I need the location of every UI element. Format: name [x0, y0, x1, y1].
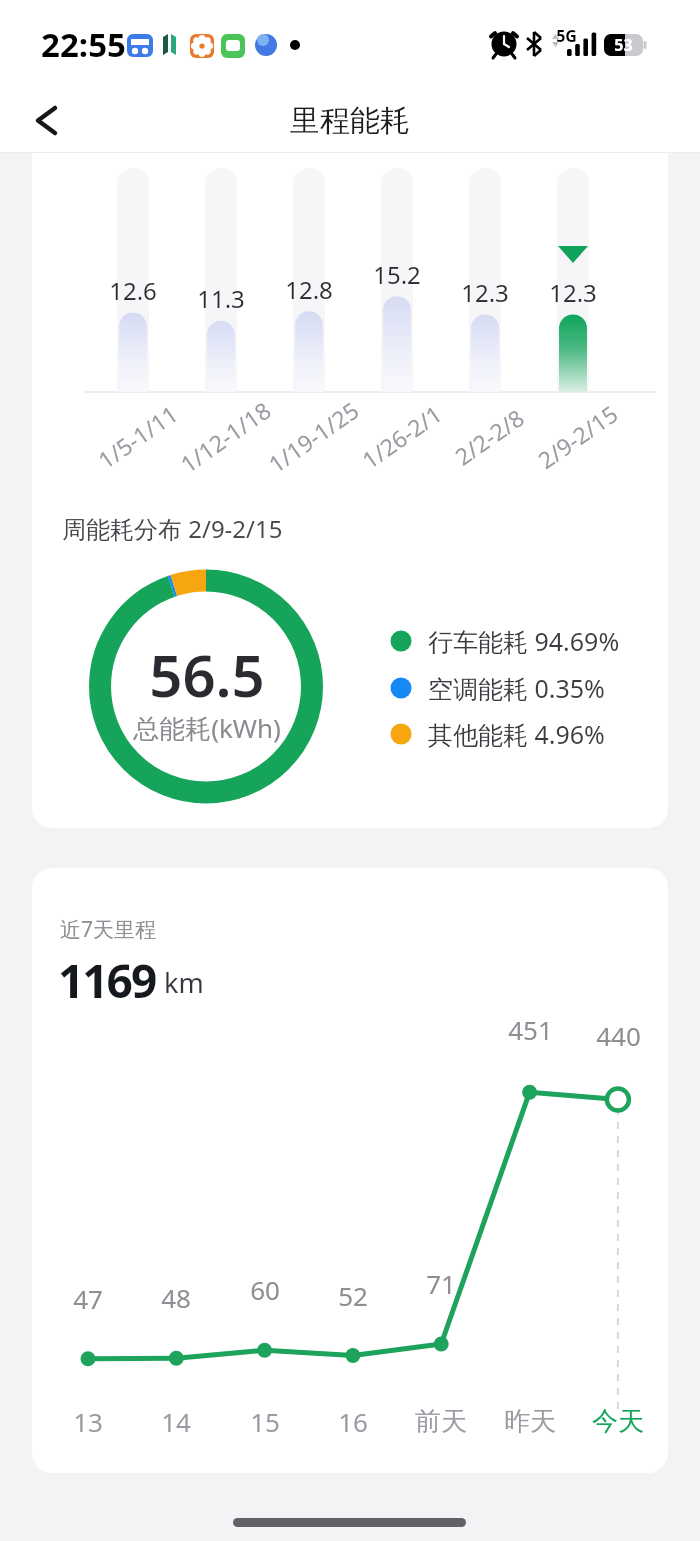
staticText: 15	[250, 1404, 280, 1439]
staticText: 2/2-2/8	[448, 401, 529, 471]
button[interactable]	[20, 100, 64, 144]
staticText: 1/26-2/1	[355, 397, 447, 474]
staticText: 451	[508, 1012, 553, 1047]
staticText: km	[164, 964, 204, 1001]
staticText: 1/5-1/11	[91, 397, 183, 474]
staticText: 行车能耗 94.69%	[428, 624, 620, 658]
staticText: 14	[161, 1404, 191, 1439]
staticText: 12.3	[461, 276, 509, 309]
staticText: 440	[596, 1018, 641, 1053]
staticText: 里程能耗	[290, 102, 410, 140]
staticText: 12.3	[549, 276, 597, 309]
staticText: 47	[73, 1281, 103, 1316]
staticText: 60	[250, 1272, 280, 1307]
staticText: 22:55	[41, 22, 126, 67]
staticText: 1/12-1/18	[174, 394, 276, 478]
staticText: 11.3	[197, 282, 245, 315]
staticText: 空调能耗 0.35%	[428, 671, 605, 705]
staticText: 前天	[415, 1405, 467, 1438]
staticText: 12.8	[285, 273, 333, 306]
staticText: 近7天里程	[60, 915, 157, 944]
staticText: 52	[338, 1278, 368, 1313]
staticText: 56.5	[149, 635, 265, 714]
staticText: 今天	[592, 1405, 644, 1438]
staticText: 12.6	[109, 274, 157, 307]
staticText: 71	[426, 1266, 456, 1301]
staticText: 16	[338, 1404, 368, 1439]
staticText: 2/9-2/15	[531, 397, 623, 474]
staticText: 其他能耗 4.96%	[428, 717, 605, 751]
staticText: 昨天	[504, 1405, 556, 1438]
staticText: 1/19-1/25	[262, 394, 364, 478]
staticText: 53	[614, 34, 633, 56]
staticText: 48	[161, 1280, 191, 1315]
staticText: 1169	[58, 949, 156, 1001]
staticText: 5G	[556, 25, 577, 47]
staticText: 周能耗分布 2/9-2/15	[62, 512, 283, 545]
staticText: 13	[73, 1404, 103, 1439]
staticText: 15.2	[373, 258, 421, 291]
staticText: 总能耗(kWh)	[133, 710, 281, 746]
